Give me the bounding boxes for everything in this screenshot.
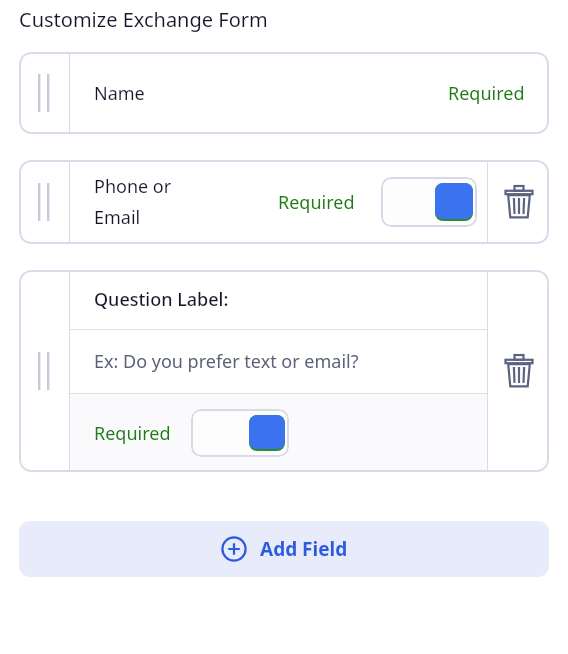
button[interactable]: Delete field [488, 160, 549, 244]
staticText: Add Field [260, 536, 348, 562]
staticText: Ex: Do you prefer text or email? [94, 349, 359, 374]
button[interactable]: Required toggle, on [191, 409, 289, 457]
staticText: Email [94, 205, 141, 230]
staticText: Phone or [94, 174, 172, 199]
button[interactable]: Reorder Name field [19, 52, 69, 134]
staticText: Customize Exchange Form [19, 6, 268, 33]
other: Delete field [504, 185, 534, 219]
staticText: Question Label: [94, 287, 229, 312]
button[interactable]: Reorder Phone or Email field [19, 160, 69, 244]
staticText: Required [278, 190, 355, 215]
button[interactable]: Delete field [488, 270, 549, 472]
button[interactable]: Required toggle, on [381, 177, 477, 227]
button[interactable]: Ex: Do you prefer text or email? [94, 330, 487, 393]
other: Delete field [504, 354, 534, 388]
staticText: Required [94, 421, 171, 446]
staticText: Name [94, 81, 145, 106]
staticText: Required [448, 81, 525, 106]
button[interactable]: Reorder custom question field [19, 270, 69, 472]
button[interactable]: Add Field [19, 521, 549, 577]
